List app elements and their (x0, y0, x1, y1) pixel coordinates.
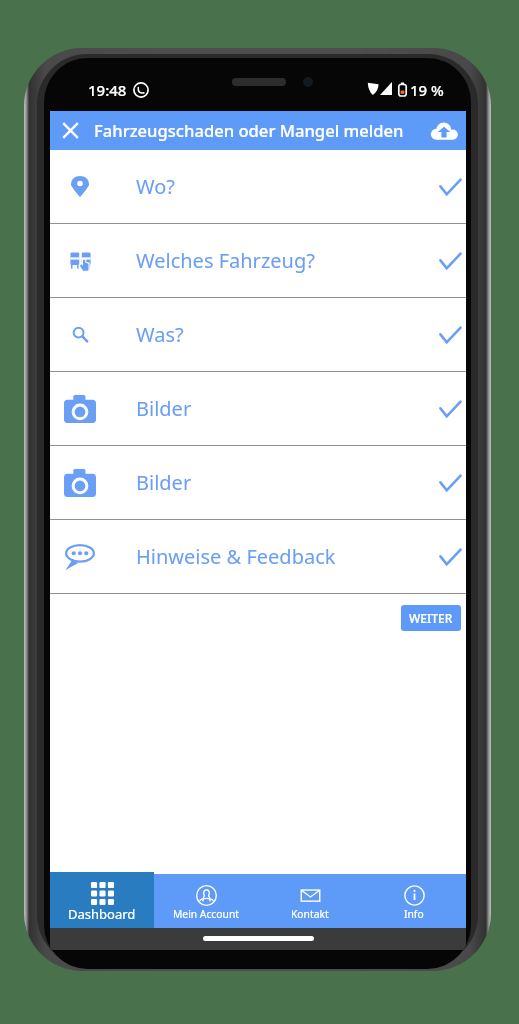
staticText: Bilder (136, 395, 192, 422)
button[interactable]: Bilder (50, 372, 466, 445)
button[interactable]: Close (52, 111, 88, 150)
button[interactable]: Welches Fahrzeug? (50, 224, 466, 297)
staticText: Dashboard (68, 905, 136, 923)
staticText: Mein Account (173, 907, 239, 921)
staticText: 19:48 (88, 80, 127, 100)
button[interactable]: Kontakt (258, 874, 362, 928)
staticText: Welches Fahrzeug? (136, 247, 315, 274)
staticText: Kontakt (291, 907, 329, 921)
staticText: Fahrzeugschaden oder Mangel melden (94, 119, 404, 142)
button[interactable]: Was? (50, 298, 466, 371)
staticText: Was? (136, 321, 184, 348)
button[interactable]: Hinweise & Feedback (50, 520, 466, 593)
staticText: Bilder (136, 469, 192, 496)
button[interactable]: Dashboard (50, 872, 154, 928)
button[interactable]: Info (362, 874, 466, 928)
button[interactable]: WEITER (401, 605, 461, 631)
button[interactable]: Mein Account (154, 874, 258, 928)
staticText: Hinweise & Feedback (136, 543, 336, 570)
button[interactable]: Upload (422, 111, 466, 150)
button[interactable]: Wo? (50, 150, 466, 223)
staticText: Info (404, 907, 424, 921)
staticText: WEITER (409, 610, 453, 626)
staticText: Wo? (136, 173, 175, 200)
button[interactable]: Bilder (50, 446, 466, 519)
staticText: 19 % (410, 80, 444, 100)
